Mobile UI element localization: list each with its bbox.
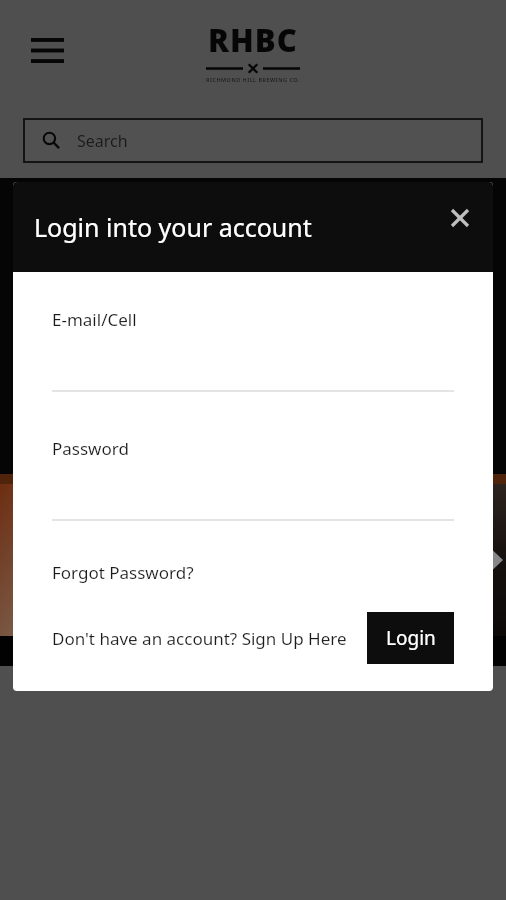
staticText: HARD LEMONADE bbox=[114, 569, 150, 574]
button[interactable]: E-mail/Cell bbox=[52, 308, 454, 392]
staticText: RICHMOND HILL BREWING CO. bbox=[206, 76, 300, 83]
staticText: Forgot Password? bbox=[52, 561, 194, 584]
button[interactable]: Search bbox=[23, 118, 483, 163]
button[interactable]: Don't have an account? Sign Up Here bbox=[52, 627, 355, 650]
staticText: RHBC bbox=[208, 19, 298, 61]
button[interactable]: Password bbox=[52, 437, 454, 521]
button[interactable]: Open navigation menu bbox=[31, 28, 75, 72]
staticText: Login bbox=[386, 625, 436, 651]
staticText: Search bbox=[77, 130, 128, 152]
button[interactable]: Login bbox=[367, 612, 454, 664]
staticText: Password bbox=[52, 437, 129, 460]
button[interactable]: Forgot Password? bbox=[52, 561, 194, 584]
button[interactable]: Close bbox=[444, 202, 476, 234]
staticText: Don't have an account? Sign Up Here bbox=[52, 627, 347, 650]
staticText: Login into your account bbox=[34, 210, 312, 244]
staticText: E-mail/Cell bbox=[52, 308, 137, 331]
